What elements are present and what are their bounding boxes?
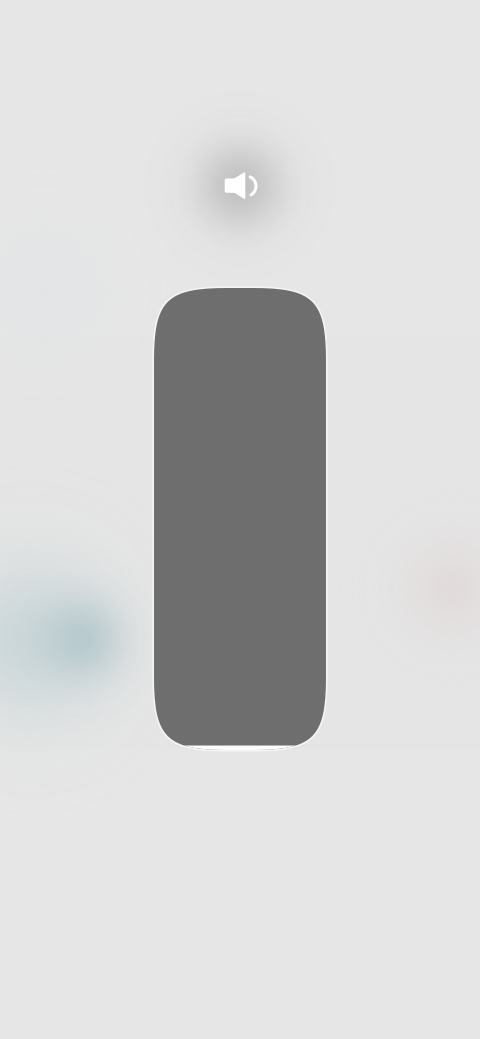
button[interactable]: Mute xyxy=(223,169,257,203)
button[interactable]: Volume xyxy=(152,286,328,752)
